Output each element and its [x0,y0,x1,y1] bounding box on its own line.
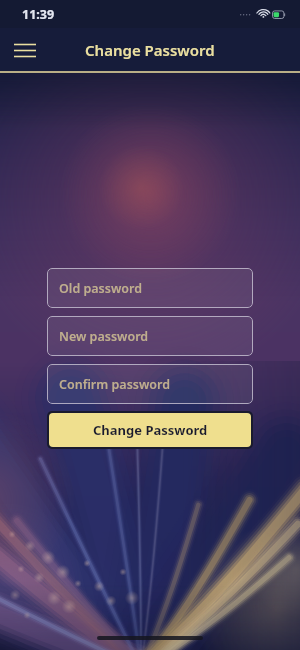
button[interactable]: Change Password [49,413,251,447]
staticText: 11:39 [22,6,55,23]
button[interactable]: New password [47,316,253,356]
staticText: Change Password [93,421,208,439]
button[interactable]: Confirm password [47,364,253,404]
button[interactable]: Open navigation menu [7,32,43,68]
staticText: New password [59,328,149,345]
staticText: Change Password [85,40,215,60]
staticText: Old password [59,280,143,297]
button[interactable]: Old password [47,268,253,308]
staticText: Confirm password [59,376,171,393]
